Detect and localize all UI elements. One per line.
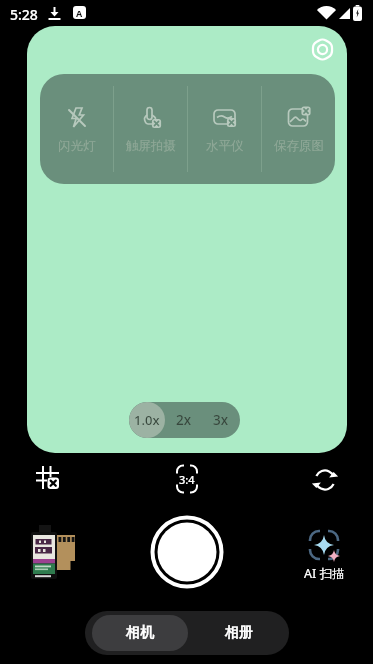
button[interactable]: 相册 <box>188 611 289 655</box>
button[interactable] <box>309 36 336 63</box>
staticText: 触屏拍摄 <box>126 138 176 154</box>
staticText: 保存原图 <box>274 138 324 154</box>
button[interactable] <box>313 468 337 492</box>
button[interactable]: 2x <box>165 402 202 438</box>
button[interactable]: 保存原图 <box>262 74 335 184</box>
button[interactable]: 3x <box>202 402 240 438</box>
staticText: A <box>76 7 83 19</box>
button[interactable] <box>150 515 224 589</box>
staticText: 3x <box>213 411 229 429</box>
button[interactable]: 3:4 <box>172 464 202 494</box>
button[interactable]: 触屏拍摄 <box>114 74 187 184</box>
button[interactable] <box>36 466 59 489</box>
button[interactable] <box>26 517 78 581</box>
staticText: 闪光灯 <box>58 138 96 154</box>
staticText: 1.0x <box>134 411 160 429</box>
button[interactable]: 水平仪 <box>188 74 261 184</box>
staticText: 相册 <box>225 624 253 642</box>
staticText: 3:4 <box>179 472 195 487</box>
button[interactable]: AI 扫描 <box>294 528 354 584</box>
staticText: 5:28 <box>10 5 38 24</box>
button[interactable]: 闪光灯 <box>40 74 113 184</box>
staticText: AI 扫描 <box>304 565 345 582</box>
staticText: 水平仪 <box>206 138 244 154</box>
button[interactable]: 相机 <box>92 615 188 651</box>
button[interactable]: 1.0x <box>129 402 165 438</box>
staticText: 相机 <box>126 624 154 642</box>
staticText: 2x <box>176 411 192 429</box>
